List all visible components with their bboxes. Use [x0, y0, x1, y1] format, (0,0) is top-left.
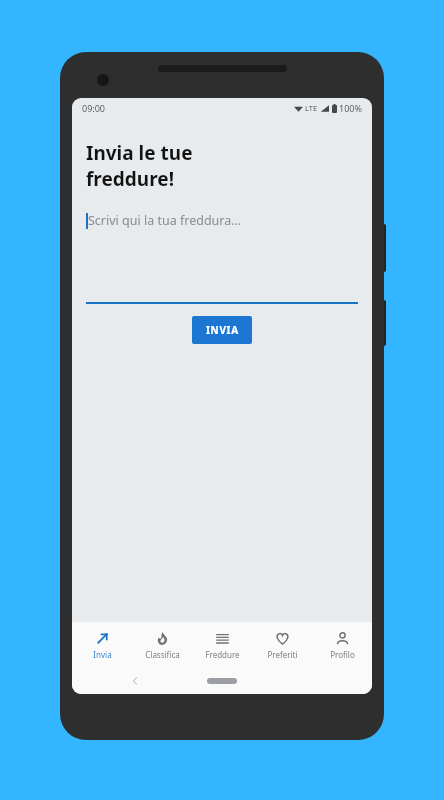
button[interactable]: Freddure	[192, 622, 252, 668]
button[interactable]: Scrivi qui la tua freddura…	[86, 212, 358, 302]
staticText: Invia	[93, 649, 112, 660]
staticText: Invia le tue	[86, 140, 193, 166]
button[interactable]: Invia	[72, 622, 132, 668]
staticText: INVIA	[206, 323, 239, 337]
staticText: Classifica	[145, 649, 180, 660]
button[interactable]: Classifica	[132, 622, 192, 668]
staticText: Profilo	[330, 649, 355, 660]
staticText: Freddure	[205, 649, 240, 660]
button[interactable]: Profilo	[312, 622, 372, 668]
button[interactable]: Preferiti	[252, 622, 312, 668]
staticText: 09:00	[82, 102, 106, 114]
button[interactable]: Back	[130, 676, 140, 686]
staticText: LTE	[305, 103, 318, 113]
button[interactable]: INVIA	[192, 316, 252, 344]
staticText: Preferiti	[267, 649, 298, 660]
staticText: freddure!	[86, 166, 174, 192]
staticText: 100%	[339, 102, 362, 114]
button[interactable]: Home	[207, 678, 237, 684]
staticText: Scrivi qui la tua freddura…	[88, 212, 242, 229]
